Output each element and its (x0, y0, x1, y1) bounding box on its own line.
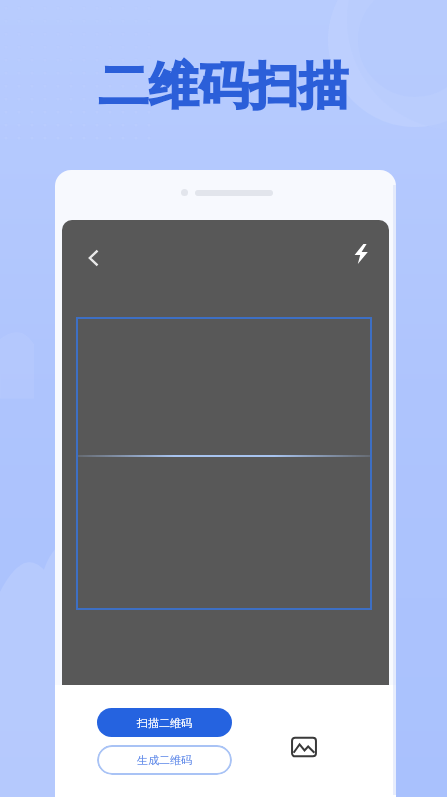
button[interactable]: 扫描二维码 (97, 708, 232, 737)
button[interactable]: Pick image from gallery (284, 727, 324, 767)
button[interactable]: Flash (341, 234, 381, 274)
staticText: 二维码扫描 (0, 55, 447, 118)
staticText: 生成二维码 (137, 753, 192, 767)
staticText: 扫描二维码 (137, 716, 192, 730)
button[interactable]: Back (72, 236, 116, 280)
button[interactable]: 生成二维码 (97, 745, 232, 775)
